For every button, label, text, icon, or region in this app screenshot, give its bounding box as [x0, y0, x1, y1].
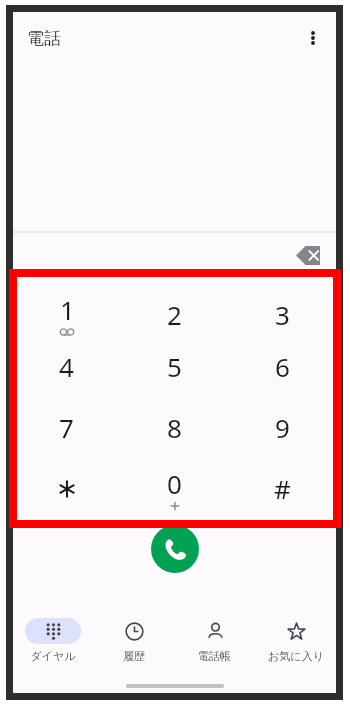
button[interactable]: 6 [228, 336, 336, 397]
staticText: 電話帳 [198, 649, 231, 663]
staticText: お気に入り [268, 649, 324, 663]
button[interactable]: 履歴 [93, 607, 174, 679]
staticText: ダイヤル [30, 649, 76, 663]
button[interactable]: 2 [120, 292, 228, 336]
staticText: 0 [167, 466, 182, 501]
staticText: 6 [275, 349, 290, 384]
button[interactable]: 削除 [292, 238, 326, 272]
staticText: 8 [167, 410, 182, 445]
button[interactable]: 9 [228, 397, 336, 458]
staticText: # [274, 471, 291, 506]
button[interactable]: 1 [13, 292, 120, 336]
button[interactable]: 3 [228, 292, 336, 336]
button[interactable]: 0 [120, 458, 228, 519]
button[interactable]: 7 [13, 397, 120, 458]
button[interactable]: その他のオプション [296, 21, 330, 55]
staticText: 9 [275, 410, 290, 445]
staticText: 5 [167, 349, 182, 384]
staticText: 2 [167, 297, 182, 332]
button[interactable]: 4 [13, 336, 120, 397]
staticText: 電話 [27, 28, 61, 49]
button[interactable]: 8 [120, 397, 228, 458]
staticText: 1 [60, 292, 75, 327]
staticText: 7 [59, 410, 74, 445]
button[interactable]: ダイヤル [13, 607, 93, 679]
staticText: 3 [275, 297, 290, 332]
button[interactable]: 発信 [151, 525, 199, 573]
button[interactable]: # [228, 458, 336, 519]
staticText: 履歴 [123, 649, 145, 663]
staticText: 4 [59, 349, 74, 384]
button[interactable]: お気に入り [255, 607, 336, 679]
button[interactable]: 5 [120, 336, 228, 397]
button[interactable] [13, 458, 120, 519]
button[interactable]: 電話帳 [174, 607, 255, 679]
